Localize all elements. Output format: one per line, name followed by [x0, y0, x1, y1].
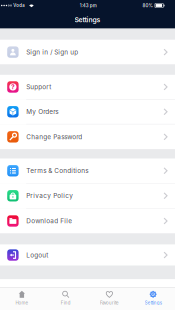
button[interactable]: Change Password [0, 124, 175, 149]
staticText: Sign in / Sign up [26, 48, 78, 56]
staticText: Download File [26, 217, 72, 225]
button[interactable]: ? [0, 75, 175, 100]
button[interactable]: Home [0, 287, 44, 310]
staticText: Logout [26, 251, 48, 259]
staticText: Voda [13, 3, 24, 8]
staticText: Support [26, 83, 51, 91]
button[interactable]: Logout [0, 244, 175, 266]
staticText: ? [11, 83, 15, 91]
button[interactable]: Find [44, 287, 88, 310]
staticText: Find [61, 300, 71, 305]
staticText: My Orders [26, 108, 58, 116]
button[interactable]: Privacy Policy [0, 183, 175, 208]
button[interactable]: My Orders [0, 100, 175, 124]
staticText: 1:43 pm [80, 3, 97, 8]
staticText: Settings [145, 300, 162, 305]
staticText: Favourite [100, 300, 119, 305]
staticText: Home [15, 300, 28, 305]
staticText: Terms & Conditions [26, 167, 88, 175]
button[interactable]: Terms & Conditions [0, 158, 175, 183]
button[interactable]: Settings [131, 287, 175, 310]
staticText: 80% [142, 3, 153, 8]
button[interactable]: Download File [0, 208, 175, 233]
staticText: Settings [74, 16, 100, 24]
staticText: Privacy Policy [26, 192, 73, 200]
button[interactable]: Sign in / Sign up [0, 40, 175, 64]
button[interactable]: Favourite [87, 287, 131, 310]
staticText: Change Password [26, 133, 82, 141]
